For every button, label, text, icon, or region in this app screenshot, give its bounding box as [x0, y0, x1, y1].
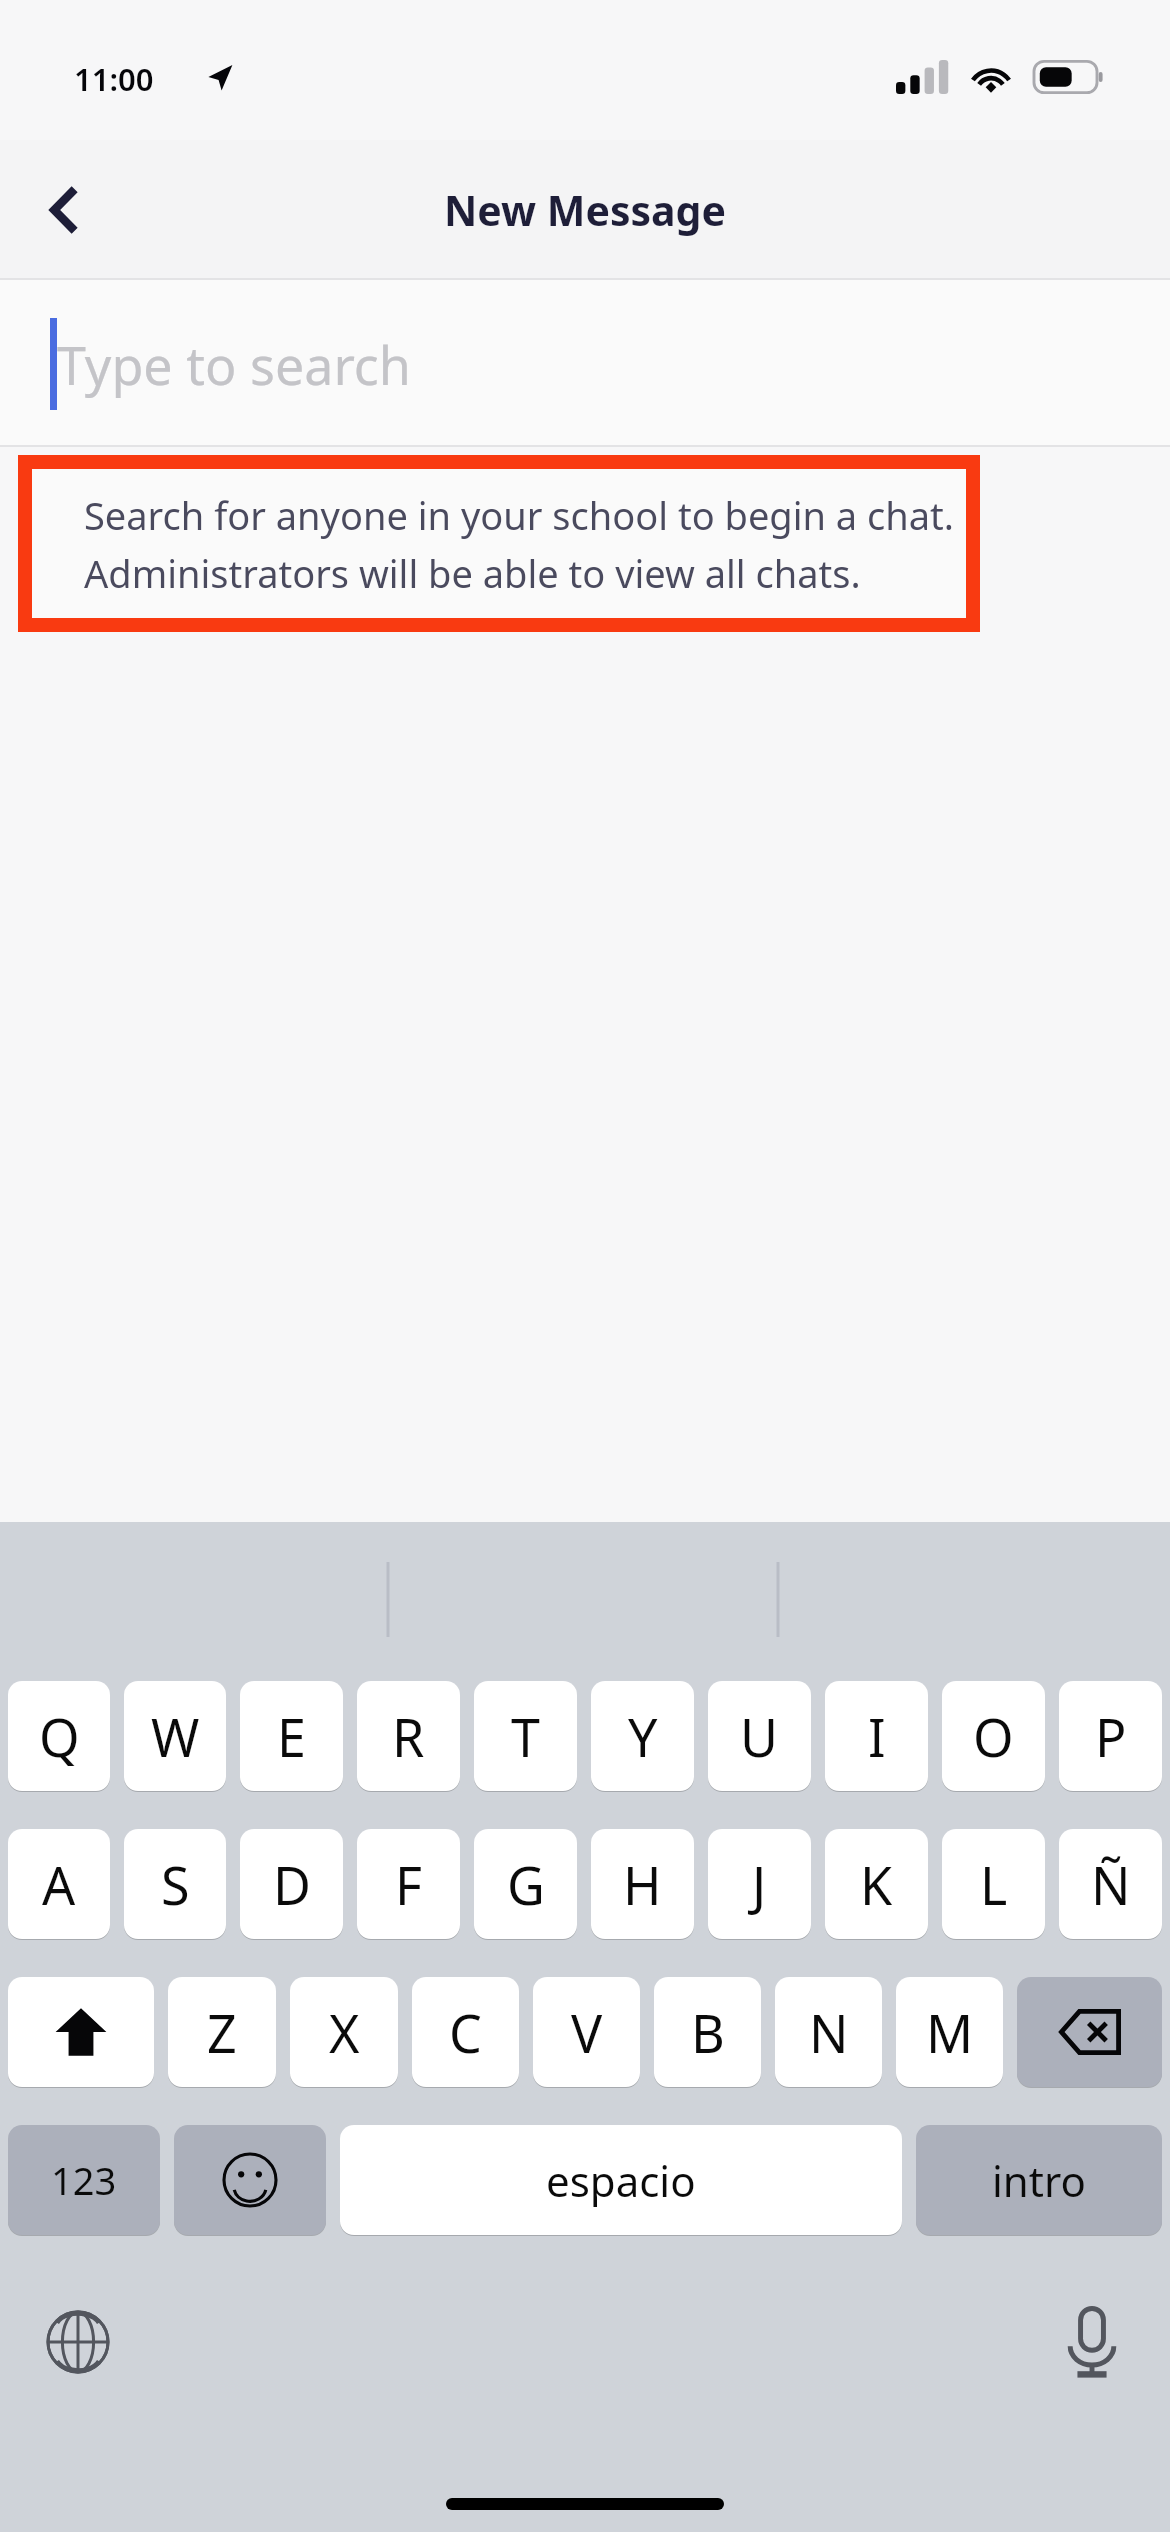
button[interactable]: 123 — [8, 2125, 160, 2235]
staticText: J — [752, 1849, 767, 1920]
staticText: Administrators will be able to view all … — [84, 547, 861, 599]
button[interactable]: U — [708, 1681, 811, 1791]
button[interactable]: M — [896, 1977, 1003, 2087]
staticText: New Message — [444, 182, 726, 238]
staticText: U — [740, 1701, 779, 1772]
staticText: L — [980, 1849, 1008, 1920]
button[interactable]: X — [290, 1977, 398, 2087]
staticText: E — [277, 1701, 306, 1772]
button[interactable]: V — [533, 1977, 640, 2087]
button[interactable]: intro — [916, 2125, 1162, 2235]
button[interactable]: F — [357, 1829, 460, 1939]
staticText: Q — [39, 1701, 80, 1772]
staticText: X — [329, 1997, 360, 2068]
staticText: S — [161, 1849, 190, 1920]
staticText: K — [860, 1849, 893, 1920]
button[interactable]: O — [942, 1681, 1045, 1791]
staticText: H — [623, 1849, 662, 1920]
button[interactable]: P — [1059, 1681, 1162, 1791]
staticText: Z — [207, 1997, 237, 2068]
staticText: P — [1095, 1701, 1127, 1772]
staticText: 11:00 — [74, 58, 154, 100]
button[interactable]: Dictation — [1044, 2294, 1140, 2390]
button[interactable]: Shift — [8, 1977, 154, 2087]
button[interactable]: Q — [8, 1681, 110, 1791]
button[interactable]: A — [8, 1829, 110, 1939]
button[interactable]: Emoji — [174, 2125, 326, 2235]
button[interactable]: Z — [168, 1977, 276, 2087]
staticText: 123 — [51, 2154, 117, 2206]
staticText: N — [809, 1997, 849, 2068]
staticText: Ñ — [1091, 1849, 1131, 1920]
button[interactable]: H — [591, 1829, 694, 1939]
button[interactable]: R — [357, 1681, 460, 1791]
button[interactable]: G — [474, 1829, 577, 1939]
button[interactable]: Ñ — [1059, 1829, 1162, 1939]
button[interactable]: E — [240, 1681, 343, 1791]
button[interactable]: N — [775, 1977, 882, 2087]
staticText: G — [507, 1849, 545, 1920]
staticText: intro — [992, 2152, 1086, 2209]
staticText: Search for anyone in your school to begi… — [84, 489, 955, 541]
staticText: O — [973, 1701, 1014, 1772]
staticText: M — [926, 1997, 974, 2068]
staticText: T — [511, 1701, 540, 1772]
staticText: B — [691, 1997, 725, 2068]
button[interactable]: espacio — [340, 2125, 902, 2235]
button[interactable]: Back — [20, 166, 108, 254]
staticText: D — [273, 1849, 311, 1920]
staticText: V — [571, 1997, 603, 2068]
staticText: espacio — [546, 2152, 696, 2209]
button[interactable]: D — [240, 1829, 343, 1939]
button[interactable]: Y — [591, 1681, 694, 1791]
button[interactable]: Change keyboard — [30, 2294, 126, 2390]
button[interactable]: S — [124, 1829, 226, 1939]
button[interactable]: I — [825, 1681, 928, 1791]
staticText: R — [392, 1701, 425, 1772]
button[interactable]: Type to search — [0, 280, 1170, 447]
button[interactable]: Backspace — [1017, 1977, 1162, 2087]
staticText: Type to search — [57, 329, 411, 400]
button[interactable]: J — [708, 1829, 811, 1939]
staticText: W — [151, 1701, 200, 1772]
staticText: I — [868, 1701, 886, 1772]
staticText: Y — [628, 1701, 658, 1772]
button[interactable]: K — [825, 1829, 928, 1939]
button[interactable]: W — [124, 1681, 226, 1791]
staticText: A — [42, 1849, 76, 1920]
button[interactable]: C — [412, 1977, 519, 2087]
button[interactable]: B — [654, 1977, 761, 2087]
button[interactable]: L — [942, 1829, 1045, 1939]
staticText: F — [395, 1849, 422, 1920]
button[interactable]: T — [474, 1681, 577, 1791]
staticText: C — [449, 1997, 482, 2068]
